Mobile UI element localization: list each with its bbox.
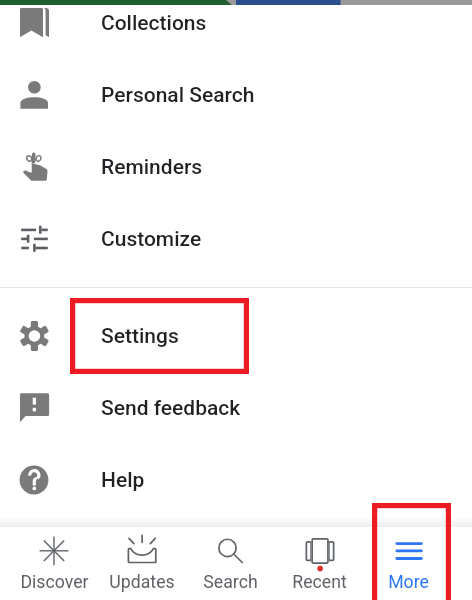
staticText: Send feedback [101, 396, 241, 421]
button[interactable]: Discover [10, 527, 98, 600]
button[interactable]: Recent [275, 527, 364, 600]
staticText: Collections [101, 11, 207, 36]
button[interactable]: Reminders [0, 131, 472, 203]
staticText: Help [101, 468, 145, 493]
button[interactable]: Customize [0, 203, 472, 275]
staticText: Recent [292, 572, 347, 593]
staticText: Settings [101, 324, 179, 349]
staticText: Personal Search [101, 83, 255, 108]
staticText: Updates [109, 572, 175, 593]
staticText: Reminders [101, 155, 203, 180]
button[interactable]: Updates [98, 527, 186, 600]
button[interactable]: Search [186, 527, 275, 600]
staticText: Search [203, 572, 258, 593]
button[interactable]: More [364, 527, 453, 600]
staticText: More [388, 572, 429, 593]
button[interactable]: Collections [0, 0, 472, 59]
staticText: Customize [101, 227, 202, 252]
button[interactable]: Help [0, 444, 472, 516]
button[interactable]: Settings [0, 300, 472, 372]
button[interactable]: Send feedback [0, 372, 472, 444]
button[interactable]: Personal Search [0, 59, 472, 131]
staticText: Discover [20, 572, 89, 593]
